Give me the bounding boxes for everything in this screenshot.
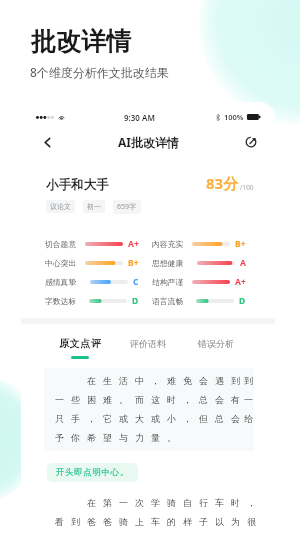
staticText: 以 <box>215 516 224 527</box>
staticText: 一 <box>119 497 128 508</box>
staticText: 。 <box>167 432 176 443</box>
staticText: 很 <box>247 516 256 527</box>
staticText: 批改详情 <box>31 26 131 57</box>
staticText: 自 <box>183 497 192 508</box>
staticText: 100% <box>224 112 244 122</box>
staticText: 小 <box>167 413 176 424</box>
button[interactable]: Share <box>240 131 262 153</box>
staticText: 予 <box>55 432 64 443</box>
staticText: 原文点评 <box>59 337 102 350</box>
staticText: 子 <box>199 516 208 527</box>
staticText: 你 <box>71 432 80 443</box>
staticText: 手 <box>71 413 80 424</box>
staticText: 总 <box>215 413 224 424</box>
staticText: ， <box>183 394 192 405</box>
staticText: 但 <box>199 413 208 424</box>
staticText: 力 <box>135 432 144 443</box>
staticText: 到 <box>244 375 253 386</box>
staticText: 。 <box>119 394 128 405</box>
staticText: 遇 <box>215 375 224 386</box>
staticText: D <box>239 295 246 307</box>
staticText: 结构严谨 <box>152 277 184 287</box>
staticText: 难 <box>103 394 112 405</box>
staticText: 切合题意 <box>45 239 77 249</box>
staticText: 免 <box>183 375 192 386</box>
staticText: 的 <box>167 516 176 527</box>
staticText: 只 <box>55 413 64 424</box>
button[interactable]: 错误分析 <box>182 325 250 358</box>
staticText: 小手和大手 <box>46 177 109 193</box>
staticText: 时 <box>167 394 176 405</box>
staticText: 一 <box>244 394 253 405</box>
staticText: 活 <box>119 375 128 386</box>
staticText: 上 <box>135 516 144 527</box>
staticText: A <box>240 257 246 269</box>
staticText: A+ <box>128 238 139 250</box>
staticText: 8个维度分析作文批改结果 <box>30 64 169 80</box>
staticText: 而 <box>135 394 144 405</box>
staticText: 或 <box>151 413 160 424</box>
staticText: 时 <box>231 497 240 508</box>
staticText: 样 <box>183 516 192 527</box>
staticText: ， <box>183 413 192 424</box>
staticText: 中 <box>135 375 144 386</box>
staticText: AI批改详情 <box>118 134 179 150</box>
staticText: 希 <box>87 432 96 443</box>
staticText: 思想健康 <box>152 258 184 268</box>
staticText: ， <box>87 413 96 424</box>
staticText: 骑 <box>119 516 128 527</box>
staticText: 难 <box>167 375 176 386</box>
staticText: 爸 <box>103 516 112 527</box>
staticText: 议论文 <box>50 202 71 211</box>
staticText: 评价语料 <box>130 338 166 349</box>
button[interactable]: 评价语料 <box>114 325 182 358</box>
staticText: 骑 <box>167 497 176 508</box>
staticText: 到 <box>71 516 80 527</box>
staticText: 有 <box>231 394 240 405</box>
staticText: 一 <box>55 394 64 405</box>
button[interactable]: Back <box>36 131 58 153</box>
staticText: 为 <box>231 516 240 527</box>
staticText: 内容充实 <box>152 239 184 249</box>
staticText: 第 <box>103 497 112 508</box>
staticText: 9:30 AM <box>124 112 155 123</box>
staticText: 困 <box>87 394 96 405</box>
staticText: 看 <box>55 516 64 527</box>
staticText: 行 <box>199 497 208 508</box>
button[interactable]: 原文点评 <box>46 324 114 359</box>
staticText: 总 <box>199 394 208 405</box>
staticText: B+ <box>235 238 246 250</box>
staticText: 感情真挚 <box>45 277 77 287</box>
staticText: 这 <box>151 394 160 405</box>
staticText: 会 <box>231 413 240 424</box>
staticText: D <box>132 295 139 307</box>
staticText: 学 <box>151 497 160 508</box>
staticText: C <box>133 276 139 288</box>
staticText: 中心突出 <box>45 258 77 268</box>
staticText: 会 <box>199 375 208 386</box>
staticText: 或 <box>119 413 128 424</box>
staticText: 些 <box>71 394 80 405</box>
staticText: 量 <box>151 432 160 443</box>
staticText: 它 <box>103 413 112 424</box>
staticText: 与 <box>119 432 128 443</box>
staticText: 会 <box>215 394 224 405</box>
staticText: 开头即点明中心。 <box>56 467 129 478</box>
staticText: 到 <box>231 375 240 386</box>
staticText: 初一 <box>87 202 101 211</box>
staticText: 爸 <box>87 516 96 527</box>
staticText: /100 <box>240 183 254 192</box>
staticText: 车 <box>151 516 160 527</box>
staticText: 在 <box>87 497 96 508</box>
staticText: A+ <box>235 276 246 288</box>
staticText: 大 <box>135 413 144 424</box>
staticText: 在 <box>87 375 96 386</box>
staticText: 次 <box>135 497 144 508</box>
staticText: 车 <box>215 497 224 508</box>
staticText: 83分 <box>206 173 239 193</box>
staticText: 659字 <box>117 202 137 212</box>
staticText: ， <box>247 497 256 508</box>
staticText: 望 <box>103 432 112 443</box>
staticText: 错误分析 <box>198 338 234 349</box>
staticText: 给 <box>244 413 253 424</box>
